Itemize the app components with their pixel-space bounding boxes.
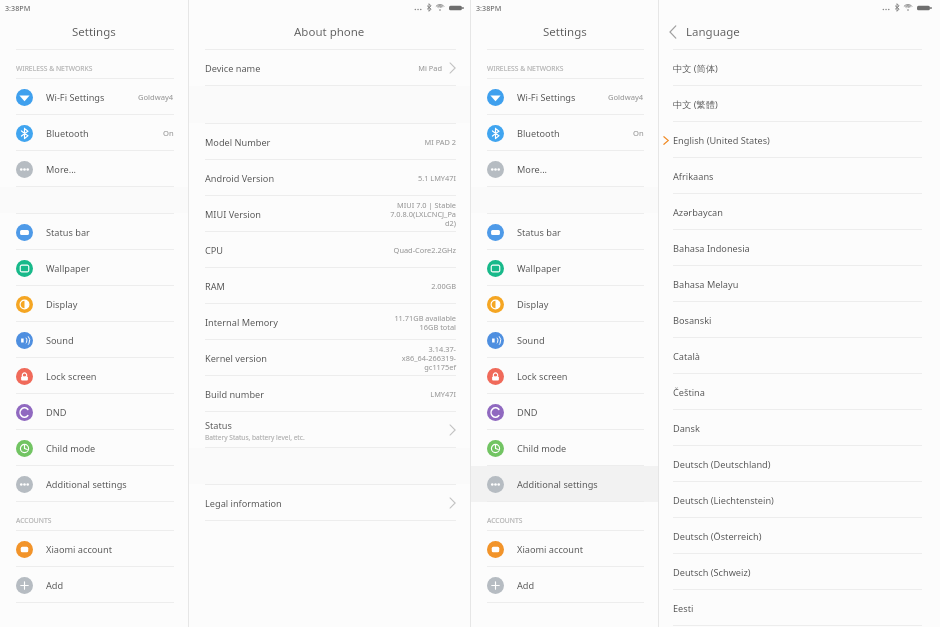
- button[interactable]: Status bar: [471, 214, 658, 250]
- staticText: Display: [517, 298, 549, 311]
- staticText: Child mode: [46, 442, 96, 455]
- button[interactable]: More...: [471, 151, 658, 187]
- button[interactable]: Add: [471, 567, 658, 603]
- button[interactable]: Display: [0, 286, 188, 322]
- staticText: Goldway4: [138, 92, 174, 102]
- button[interactable]: More...: [0, 151, 188, 187]
- staticText: Deutsch (Deutschland): [673, 458, 771, 471]
- button[interactable]: Internal Memory: [189, 304, 470, 340]
- button[interactable]: Bahasa Melayu: [659, 266, 940, 302]
- staticText: Deutsch (Liechtenstein): [673, 494, 774, 507]
- staticText: Azərbaycan: [673, 206, 723, 219]
- button[interactable]: Deutsch (Liechtenstein): [659, 482, 940, 518]
- button[interactable]: Kernel version: [189, 340, 470, 376]
- staticText: 3:38PM: [476, 3, 502, 13]
- staticText: Dansk: [673, 422, 700, 435]
- button[interactable]: Sound: [471, 322, 658, 358]
- button[interactable]: Model Number: [189, 124, 470, 160]
- button[interactable]: Add: [0, 567, 188, 603]
- button[interactable]: Device name: [189, 50, 470, 86]
- button[interactable]: Bosanski: [659, 302, 940, 338]
- button[interactable]: Bluetooth: [0, 115, 188, 151]
- button[interactable]: Additional settings: [0, 466, 188, 502]
- button[interactable]: Bluetooth: [471, 115, 658, 151]
- staticText: Additional settings: [46, 478, 127, 491]
- button[interactable]: Lock screen: [471, 358, 658, 394]
- staticText: 中文 (繁體): [673, 98, 718, 111]
- button[interactable]: Xiaomi account: [471, 531, 658, 567]
- staticText: Quad-Core2.2GHz: [368, 245, 456, 255]
- staticText: Child mode: [517, 442, 567, 455]
- button[interactable]: Status bar: [0, 214, 188, 250]
- button[interactable]: English (United States): [659, 122, 940, 158]
- button[interactable]: Legal information: [189, 485, 470, 521]
- staticText: ACCOUNTS: [16, 516, 52, 525]
- staticText: Wi-Fi Settings: [517, 91, 576, 104]
- button[interactable]: Build number: [189, 376, 470, 412]
- staticText: On: [633, 128, 644, 138]
- button[interactable]: Deutsch (Deutschland): [659, 446, 940, 482]
- button[interactable]: Wi-Fi Settings: [471, 79, 658, 115]
- button[interactable]: Child mode: [0, 430, 188, 466]
- staticText: MIUI Version: [205, 208, 261, 221]
- button[interactable]: DND: [471, 394, 658, 430]
- staticText: Android Version: [205, 172, 275, 185]
- button[interactable]: Eesti: [659, 590, 940, 626]
- staticText: Additional settings: [517, 478, 598, 491]
- staticText: CPU: [205, 244, 224, 257]
- staticText: Xiaomi account: [517, 543, 584, 556]
- staticText: Add: [46, 579, 64, 592]
- button[interactable]: DND: [0, 394, 188, 430]
- button[interactable]: Deutsch (Schweiz): [659, 554, 940, 590]
- button[interactable]: Azərbaycan: [659, 194, 940, 230]
- staticText: Wi-Fi Settings: [46, 91, 105, 104]
- button[interactable]: Child mode: [471, 430, 658, 466]
- button[interactable]: Back: [659, 15, 940, 49]
- button[interactable]: Bahasa Indonesia: [659, 230, 940, 266]
- staticText: Xiaomi account: [46, 543, 113, 556]
- button[interactable]: Additional settings: [471, 466, 658, 502]
- staticText: DND: [46, 406, 67, 419]
- button[interactable]: Xiaomi account: [0, 531, 188, 567]
- staticText: More...: [517, 163, 548, 176]
- staticText: 3.14.37- x86_64-266319- gc1175ef: [368, 344, 456, 372]
- button[interactable]: Wallpaper: [471, 250, 658, 286]
- staticText: WIRELESS & NETWORKS: [487, 64, 564, 73]
- button[interactable]: Status: [189, 412, 470, 448]
- staticText: Goldway4: [608, 92, 644, 102]
- staticText: Settings: [543, 24, 587, 40]
- staticText: Čeština: [673, 386, 705, 399]
- button[interactable]: Display: [471, 286, 658, 322]
- button[interactable]: 中文 (简体): [659, 50, 940, 86]
- button[interactable]: Android Version: [189, 160, 470, 196]
- button[interactable]: Wi-Fi Settings: [0, 79, 188, 115]
- staticText: Status: [205, 419, 232, 432]
- button[interactable]: Sound: [0, 322, 188, 358]
- staticText: Kernel version: [205, 352, 267, 365]
- staticText: Bluetooth: [517, 127, 560, 140]
- button[interactable]: Afrikaans: [659, 158, 940, 194]
- staticText: Settings: [72, 24, 116, 40]
- button[interactable]: RAM: [189, 268, 470, 304]
- button[interactable]: 中文 (繁體): [659, 86, 940, 122]
- staticText: Internal Memory: [205, 316, 278, 329]
- button[interactable]: Čeština: [659, 374, 940, 410]
- staticText: Status bar: [517, 226, 561, 239]
- staticText: Build number: [205, 388, 265, 401]
- button[interactable]: Lock screen: [0, 358, 188, 394]
- button[interactable]: Deutsch (Österreich): [659, 518, 940, 554]
- staticText: DND: [517, 406, 538, 419]
- staticText: Device name: [205, 62, 261, 75]
- staticText: English (United States): [673, 134, 770, 147]
- staticText: LMY47I: [368, 389, 456, 399]
- button[interactable]: MIUI Version: [189, 196, 470, 232]
- button[interactable]: Català: [659, 338, 940, 374]
- button[interactable]: CPU: [189, 232, 470, 268]
- staticText: Deutsch (Österreich): [673, 530, 762, 543]
- staticText: ACCOUNTS: [487, 516, 523, 525]
- button[interactable]: Wallpaper: [0, 250, 188, 286]
- staticText: About phone: [294, 24, 365, 40]
- staticText: Display: [46, 298, 78, 311]
- staticText: Sound: [517, 334, 545, 347]
- button[interactable]: Dansk: [659, 410, 940, 446]
